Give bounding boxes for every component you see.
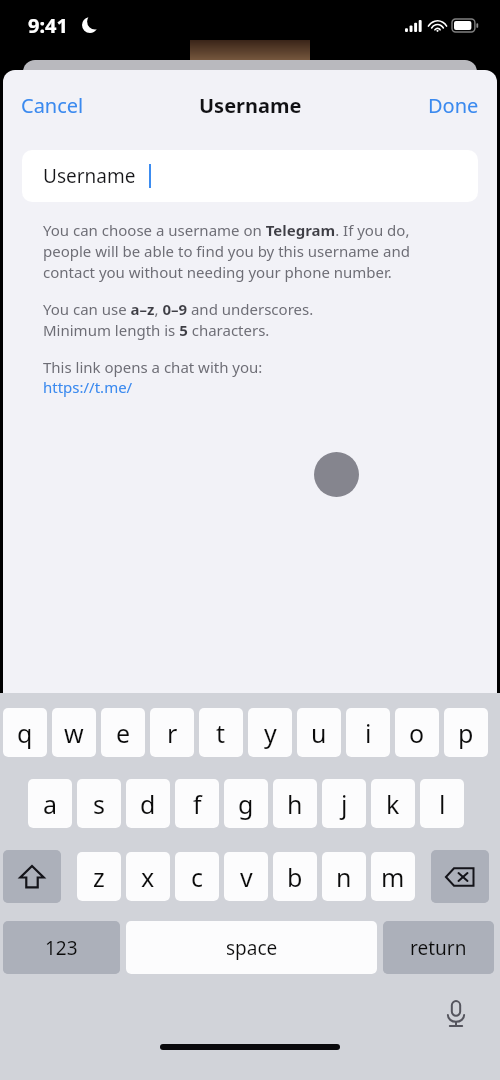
staticText: w [64,716,84,750]
staticText: s [93,787,105,821]
button[interactable]: d [126,778,170,828]
button[interactable]: s [77,778,121,828]
button[interactable]: a [28,778,72,828]
button[interactable]: f [175,778,219,828]
button[interactable] [431,849,489,903]
staticText: t [216,716,226,750]
staticText: r [167,716,178,750]
staticText: f [193,787,202,821]
button[interactable]: l [420,778,464,828]
staticText: a [43,787,58,821]
button[interactable]: h [273,778,317,828]
staticText: u [311,716,327,750]
staticText: Done [428,92,479,119]
button[interactable]: b [273,851,317,901]
staticText: https://t.me/ [43,377,133,397]
button[interactable]: u [297,707,341,757]
button[interactable]: n [322,851,366,901]
staticText: space [226,935,278,961]
other: Backspace [431,849,489,903]
button[interactable]: i [346,707,390,757]
button[interactable] [3,849,61,903]
button[interactable]: Dictation [438,996,474,1032]
button[interactable]: Cancel [11,86,94,125]
staticText: Username [43,163,136,189]
button[interactable]: q [3,707,47,757]
staticText: l [439,787,446,821]
button[interactable]: 123 [3,920,120,974]
staticText: return [410,935,467,961]
staticText: d [140,787,156,821]
staticText: c [191,860,204,894]
staticText: k [386,787,400,821]
staticText: p [458,716,474,750]
button[interactable]: t [199,707,243,757]
button[interactable]: r [150,707,194,757]
staticText: You can choose a username on Telegram. I… [43,220,457,283]
staticText: n [336,860,352,894]
staticText: v [240,860,253,894]
button[interactable]: k [371,778,415,828]
staticText: h [287,787,303,821]
button[interactable]: g [224,778,268,828]
button[interactable]: v [224,851,268,901]
staticText: You can use a–z, 0–9 and underscores. Mi… [43,299,314,341]
other: Shift [3,849,61,903]
button[interactable]: https://t.me/ [43,377,133,397]
staticText: Cancel [21,92,84,119]
button[interactable]: o [395,707,439,757]
staticText: i [365,716,372,750]
button[interactable]: x [126,851,170,901]
button[interactable]: return [383,920,494,974]
button[interactable]: j [322,778,366,828]
button[interactable]: Done [418,86,489,125]
button[interactable]: c [175,851,219,901]
staticText: x [141,860,155,894]
staticText: e [116,716,131,750]
staticText: b [287,860,303,894]
button[interactable]: Username [22,150,478,202]
button[interactable]: m [371,851,415,901]
staticText: 9:41 [28,12,68,39]
staticText: y [264,716,277,750]
staticText: m [381,860,405,894]
staticText: Username [199,92,302,119]
staticText: z [93,860,105,894]
staticText: 123 [45,935,78,961]
button[interactable]: w [52,707,96,757]
button[interactable]: y [248,707,292,757]
staticText: j [341,787,348,821]
button[interactable]: p [444,707,488,757]
button[interactable]: e [101,707,145,757]
staticText: g [238,787,254,821]
button[interactable]: z [77,851,121,901]
staticText: This link opens a chat with you: [43,357,263,377]
button[interactable]: space [126,920,377,974]
staticText: q [17,716,33,750]
staticText: o [409,716,425,750]
